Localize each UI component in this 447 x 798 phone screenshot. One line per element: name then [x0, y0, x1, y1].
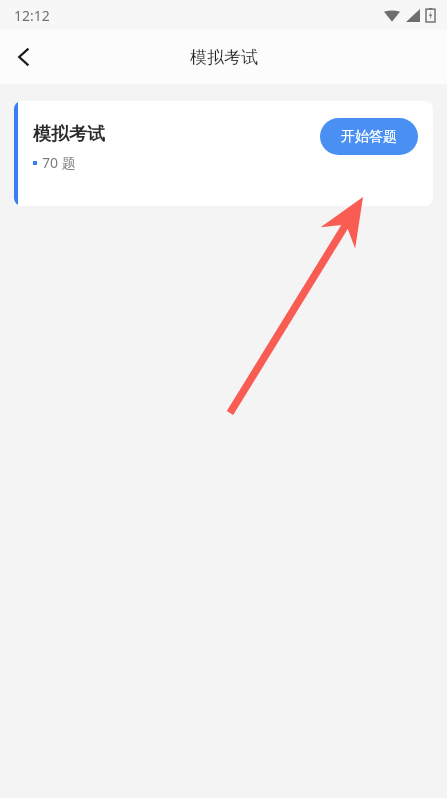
button[interactable]: Back [0, 33, 48, 81]
button[interactable]: 模拟考试 [14, 101, 433, 206]
staticText: 模拟考试 [190, 47, 258, 68]
button[interactable]: 开始答题 [320, 118, 418, 155]
staticText: 70 题 [42, 153, 76, 172]
staticText: 开始答题 [341, 128, 397, 146]
staticText: 12:12 [14, 6, 50, 25]
staticText: 模拟考试 [33, 123, 105, 146]
